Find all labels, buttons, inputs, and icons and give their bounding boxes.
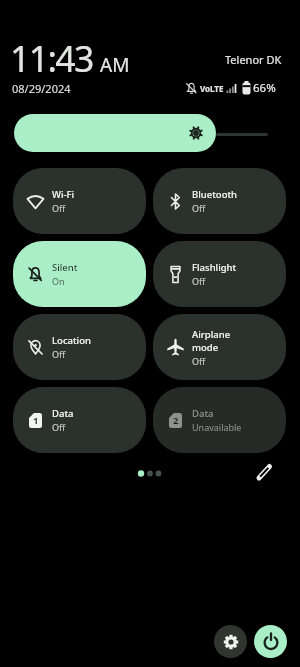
staticText: Off xyxy=(192,202,206,214)
staticText: Unavailable xyxy=(192,421,242,433)
staticText: Airplane xyxy=(192,328,231,341)
staticText: Off xyxy=(192,355,206,367)
staticText: Off xyxy=(52,202,66,214)
staticText: Off xyxy=(52,348,66,360)
button[interactable] xyxy=(214,625,247,658)
button[interactable]: Flashlight xyxy=(153,241,286,307)
button[interactable] xyxy=(254,625,287,658)
staticText: 11:43 xyxy=(10,34,93,82)
staticText: Off xyxy=(52,421,66,433)
staticText: 08/29/2024 xyxy=(12,81,71,96)
staticText: Off xyxy=(192,275,206,287)
button[interactable] xyxy=(14,114,216,152)
staticText: Bluetooth xyxy=(192,188,238,201)
staticText: AM xyxy=(100,52,130,78)
staticText: VoLTE xyxy=(200,83,224,94)
button[interactable]: Wi-Fi xyxy=(13,168,146,234)
staticText: 2 xyxy=(173,414,179,427)
button[interactable] xyxy=(252,460,278,484)
staticText: Silent xyxy=(52,261,78,274)
staticText: 66% xyxy=(253,80,276,96)
button[interactable]: Silent xyxy=(13,241,146,307)
button[interactable]: Airplane xyxy=(153,314,286,380)
staticText: Flashlight xyxy=(192,261,237,274)
button[interactable]: Bluetooth xyxy=(153,168,286,234)
staticText: Telenor DK xyxy=(225,52,282,67)
staticText: Location xyxy=(52,334,91,347)
button[interactable]: 2 xyxy=(153,387,286,453)
staticText: mode xyxy=(192,341,219,354)
staticText: Data xyxy=(192,407,214,420)
staticText: Wi-Fi xyxy=(52,188,75,201)
button[interactable]: Location xyxy=(13,314,146,380)
staticText: 1 xyxy=(33,414,39,427)
staticText: On xyxy=(52,275,65,287)
button[interactable]: 1 xyxy=(13,387,146,453)
staticText: Data xyxy=(52,407,74,420)
